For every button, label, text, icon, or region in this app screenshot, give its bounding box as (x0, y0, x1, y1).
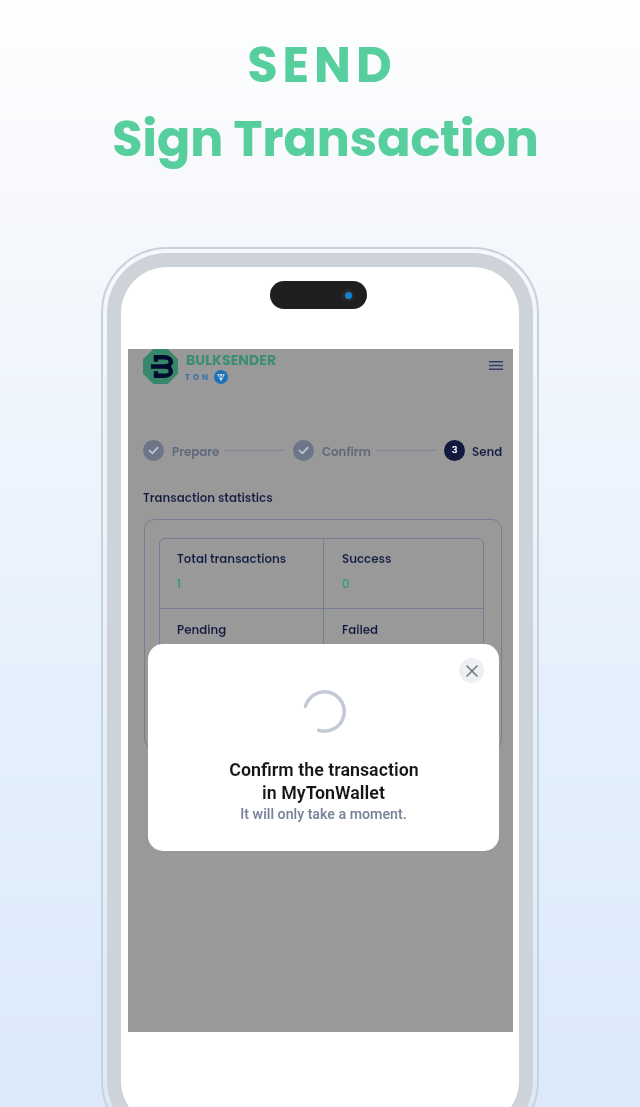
staticText: Pending (177, 622, 227, 639)
staticText: Confirm (322, 444, 371, 461)
staticText: BULKSENDER (186, 350, 277, 370)
staticText: Send (472, 444, 503, 461)
staticText: Confirm the transaction (229, 759, 419, 780)
staticText: Failed (342, 622, 379, 639)
staticText: 1 (177, 576, 182, 593)
staticText: TON (185, 372, 212, 383)
button[interactable]: Menu (480, 349, 512, 381)
staticText: Success (342, 551, 392, 568)
staticText: 0 (342, 576, 350, 593)
button[interactable]: Close (459, 658, 484, 683)
staticText: Sign Transaction (112, 105, 539, 174)
staticText: 3 (452, 444, 458, 457)
staticText: Prepare (172, 444, 220, 461)
staticText: in MyTonWallet (262, 782, 385, 803)
staticText: Total transactions (177, 551, 287, 568)
staticText: SEND (247, 31, 397, 100)
staticText: Transaction statistics (143, 490, 273, 507)
staticText: It will only take a moment. (240, 806, 407, 823)
